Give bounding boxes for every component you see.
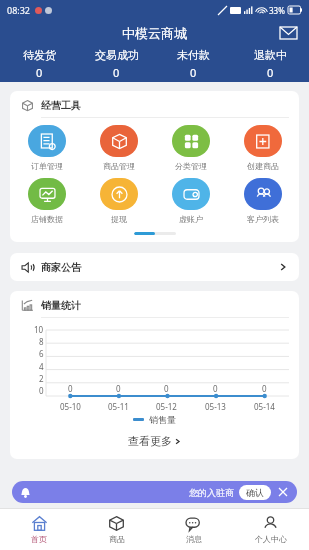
button[interactable]: 店铺数据	[10, 178, 83, 224]
staticText: 4	[39, 361, 44, 372]
staticText: 创建商品	[247, 161, 279, 171]
staticText: 消息	[186, 534, 202, 544]
staticText: 首页	[31, 534, 47, 544]
staticText: 虚账户	[179, 214, 203, 224]
button[interactable]: 消息	[155, 509, 232, 550]
button[interactable]: 客户列表	[227, 178, 299, 224]
staticText: 销售量	[149, 414, 176, 425]
button[interactable]: 商品	[78, 509, 155, 550]
staticText: 销量统计	[41, 299, 81, 312]
staticText: 05-10	[60, 401, 81, 412]
staticText: 0	[36, 65, 43, 80]
staticText: 交易成功	[95, 48, 139, 62]
staticText: 店铺数据	[31, 214, 63, 224]
staticText: 退款中	[254, 48, 287, 62]
button[interactable]: 未付款	[155, 46, 232, 82]
staticText: 确认	[246, 487, 264, 498]
staticText: 10	[34, 324, 44, 335]
staticText: 待发货	[23, 48, 56, 62]
staticText: 商品管理	[103, 161, 135, 171]
staticText: 经营工具	[41, 99, 81, 112]
button[interactable]: 确认	[239, 485, 271, 500]
staticText: 0	[164, 383, 169, 394]
button[interactable]: Messages	[277, 22, 299, 44]
other: Notification	[20, 487, 31, 498]
button[interactable]: 交易成功	[78, 46, 155, 82]
button[interactable]: Close	[277, 486, 289, 498]
staticText: 0	[213, 383, 218, 394]
staticText: 分类管理	[175, 161, 207, 171]
staticText: 8	[39, 336, 44, 347]
button[interactable]: 查看更多	[10, 432, 299, 450]
staticText: 商家公告	[41, 261, 81, 274]
staticText: 05-13	[205, 401, 226, 412]
staticText: 05-14	[254, 401, 275, 412]
staticText: 商品	[109, 534, 125, 544]
button[interactable]: 虚账户	[155, 178, 227, 224]
staticText: 0	[113, 65, 120, 80]
staticText: 05-11	[108, 401, 129, 412]
button[interactable]: 个人中心	[232, 509, 309, 550]
button[interactable]: 商家公告	[10, 253, 299, 281]
button[interactable]: 退款中	[232, 46, 309, 82]
button[interactable]: 订单管理	[10, 125, 83, 171]
staticText: 0	[68, 383, 73, 394]
staticText: 客户列表	[247, 214, 279, 224]
button[interactable]: 创建商品	[227, 125, 299, 171]
staticText: 0	[267, 65, 274, 80]
staticText: 提现	[111, 214, 127, 224]
staticText: 0	[262, 383, 267, 394]
staticText: 订单管理	[31, 161, 63, 171]
staticText: 08:32	[7, 4, 31, 16]
button[interactable]: 首页	[0, 509, 78, 550]
button[interactable]: 提现	[83, 178, 155, 224]
staticText: 2	[39, 373, 44, 384]
staticText: 6	[39, 348, 44, 359]
button[interactable]: 分类管理	[155, 125, 227, 171]
staticText: 个人中心	[255, 534, 287, 544]
staticText: 0	[190, 65, 197, 80]
staticText: 0	[116, 383, 121, 394]
staticText: 0	[39, 385, 44, 396]
button[interactable]: 商品管理	[83, 125, 155, 171]
button[interactable]: 待发货	[0, 46, 78, 82]
staticText: 中模云商城	[122, 25, 187, 41]
staticText: 查看更多	[128, 434, 172, 448]
staticText: 您的入驻商	[189, 487, 234, 498]
staticText: 未付款	[177, 48, 210, 62]
staticText: 33%	[269, 5, 285, 16]
staticText: 05-12	[156, 401, 177, 412]
